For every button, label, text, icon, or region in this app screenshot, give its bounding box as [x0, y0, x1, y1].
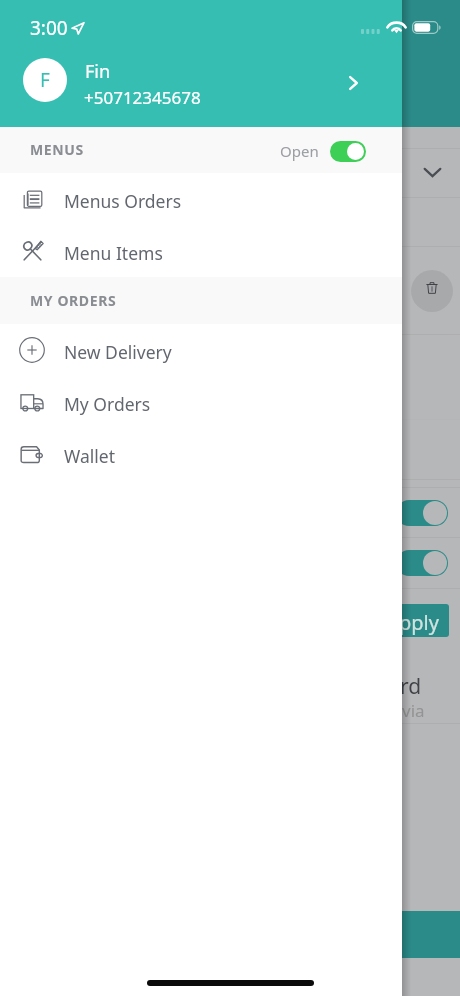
staticText: 3:00	[30, 15, 68, 41]
staticText: New Delivery	[64, 340, 172, 364]
button[interactable]: Menus Orders	[0, 173, 402, 225]
staticText: Wallet	[64, 444, 115, 468]
button[interactable]: Open toggle	[330, 141, 366, 162]
staticText: pply	[399, 609, 439, 636]
button[interactable]: Menu Items	[0, 225, 402, 277]
staticText: via	[402, 699, 425, 722]
staticText: +50712345678	[84, 86, 201, 109]
button[interactable]: Wallet	[0, 428, 402, 480]
staticText: rd	[400, 672, 422, 701]
button[interactable]: F	[0, 50, 402, 112]
staticText: Open	[280, 141, 319, 161]
staticText: MENUS	[30, 140, 84, 159]
button[interactable]: New Delivery	[0, 324, 402, 376]
other: Profile	[348, 76, 359, 90]
staticText: MY ORDERS	[30, 291, 117, 310]
staticText: My Orders	[64, 392, 151, 416]
staticText: Menu Items	[64, 241, 163, 265]
staticText: F	[40, 67, 50, 93]
button[interactable]: My Orders	[0, 376, 402, 428]
staticText: Fin	[85, 59, 111, 84]
staticText: Menus Orders	[64, 189, 182, 213]
